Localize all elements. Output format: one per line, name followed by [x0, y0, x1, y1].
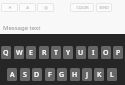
staticText: O — [103, 48, 109, 58]
button[interactable]: U — [76, 46, 86, 59]
button[interactable]: P — [113, 46, 123, 59]
button[interactable]: G — [57, 68, 67, 81]
staticText: R — [42, 48, 47, 58]
staticText: D — [34, 70, 40, 80]
staticText: G — [59, 70, 65, 80]
staticText: E — [29, 48, 33, 58]
button[interactable]: T — [51, 46, 61, 59]
button[interactable]: K — [94, 68, 104, 81]
button[interactable]: A — [7, 68, 17, 81]
staticText: H — [72, 70, 78, 80]
staticText: J — [86, 70, 89, 80]
button[interactable]: Green — [19, 3, 36, 12]
staticText: A — [26, 5, 29, 11]
staticText: F — [48, 70, 52, 80]
button[interactable]: Blue — [37, 3, 54, 12]
staticText: P — [116, 48, 121, 58]
button[interactable]: Color — [70, 3, 94, 12]
staticText: K — [97, 70, 102, 80]
staticText: S — [23, 70, 27, 80]
staticText: ◎ — [44, 5, 48, 10]
button[interactable]: Message text — [3, 22, 63, 34]
button[interactable]: E — [26, 46, 36, 59]
staticText: U — [78, 48, 84, 58]
staticText: L — [110, 70, 114, 80]
staticText: COLOR — [76, 5, 89, 10]
button[interactable]: H — [70, 68, 80, 81]
staticText: Message text — [3, 24, 41, 32]
button[interactable]: Q — [1, 46, 11, 59]
staticText: Y — [66, 48, 71, 58]
staticText: T — [54, 48, 58, 58]
staticText: ✶ — [8, 5, 12, 10]
button[interactable]: L — [107, 68, 117, 81]
staticText: Q — [3, 48, 9, 58]
button[interactable]: O — [101, 46, 111, 59]
button[interactable]: J — [82, 68, 92, 81]
staticText: I — [92, 48, 95, 58]
button[interactable]: S — [20, 68, 30, 81]
button[interactable]: Y — [63, 46, 73, 59]
button[interactable]: Red — [1, 3, 18, 12]
button[interactable]: R — [39, 46, 49, 59]
button[interactable]: W — [14, 46, 24, 59]
button[interactable]: I — [88, 46, 98, 59]
button[interactable]: D — [32, 68, 42, 81]
staticText: A — [10, 70, 15, 80]
button[interactable]: Send — [96, 3, 112, 12]
staticText: SEND — [99, 5, 109, 10]
staticText: W — [16, 48, 23, 58]
button[interactable]: F — [45, 68, 55, 81]
